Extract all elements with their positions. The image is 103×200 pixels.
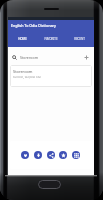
button[interactable]: Favorite	[21, 151, 29, 159]
staticText: RECENT	[74, 37, 85, 41]
staticText: HOME	[18, 37, 27, 41]
button[interactable]: More apps	[72, 151, 80, 159]
staticText: Storeroom	[13, 69, 33, 74]
staticText: ଗୋଦାମ, ଭଣ୍ଡାର ଘର	[13, 75, 41, 79]
button[interactable]: HOME	[8, 33, 36, 44]
button[interactable]: Add	[83, 54, 90, 61]
staticText: FAVORITE	[44, 37, 58, 41]
button[interactable]: RECENT	[65, 33, 94, 44]
button[interactable]: Rate	[59, 151, 67, 159]
staticText: Storeroom	[20, 55, 39, 60]
staticText: English To Odia Dictionary	[11, 23, 56, 28]
button[interactable]: Pronounce	[34, 151, 42, 159]
button[interactable]: Share	[47, 151, 55, 159]
button[interactable]: FAVORITE	[36, 33, 65, 44]
button[interactable]: Storeroom	[10, 65, 92, 87]
